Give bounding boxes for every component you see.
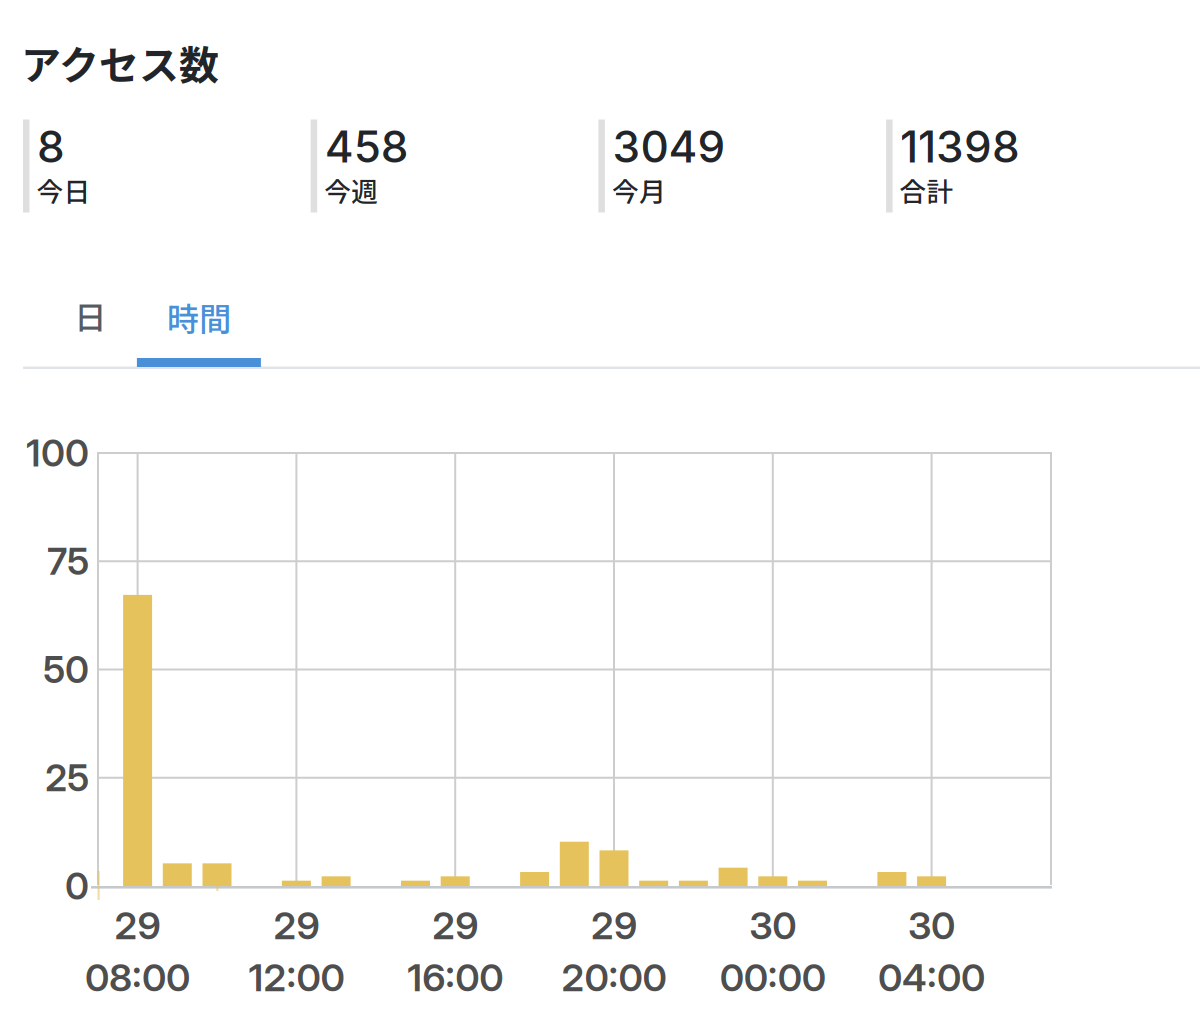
staticText: アクセス数 — [21, 33, 219, 91]
button[interactable]: 日 — [28, 272, 152, 358]
staticText: 合計 — [900, 171, 954, 209]
staticText: 今日 — [36, 171, 90, 209]
staticText: 08:00 — [85, 954, 190, 1000]
staticText: 時間 — [167, 294, 231, 340]
staticText: 29 — [591, 902, 637, 948]
staticText: 12:00 — [248, 954, 344, 1000]
staticText: 00:00 — [720, 954, 826, 1000]
staticText: 29 — [115, 902, 161, 948]
staticText: 8 — [37, 120, 65, 173]
staticText: 25 — [45, 755, 89, 800]
staticText: 20:00 — [561, 954, 666, 1000]
staticText: 0 — [65, 863, 89, 909]
staticText: 75 — [47, 539, 89, 584]
staticText: 458 — [325, 120, 409, 173]
staticText: 今週 — [324, 171, 378, 209]
staticText: 3049 — [612, 120, 725, 173]
staticText: 30 — [749, 902, 796, 948]
staticText: 29 — [273, 902, 319, 948]
staticText: 29 — [432, 902, 478, 948]
staticText: 30 — [908, 902, 955, 948]
staticText: 11398 — [900, 120, 1020, 173]
button[interactable]: 時間 — [137, 247, 261, 367]
staticText: 100 — [26, 430, 89, 476]
staticText: 今月 — [612, 171, 666, 209]
staticText: 50 — [43, 647, 89, 692]
staticText: 16:00 — [407, 954, 503, 1000]
staticText: 日 — [74, 292, 106, 339]
staticText: 04:00 — [878, 954, 985, 1000]
